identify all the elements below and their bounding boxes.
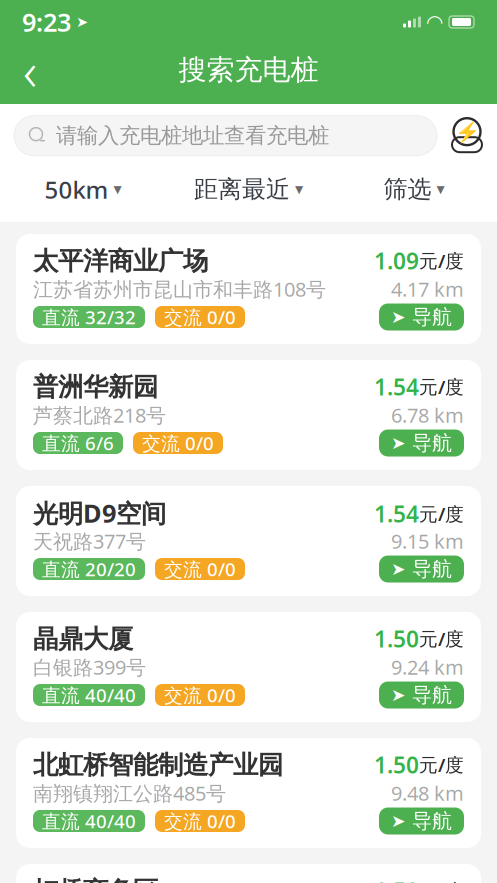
staticText: ▼ xyxy=(113,183,121,195)
staticText: 1.09 xyxy=(374,246,419,276)
staticText: 50km xyxy=(44,173,108,205)
staticText: 直流 40/40 xyxy=(42,683,136,707)
staticText: 4.17 km xyxy=(391,276,464,302)
staticText: 交流 0/0 xyxy=(164,557,236,581)
staticText: 直流 32/32 xyxy=(42,305,136,329)
staticText: 导航 xyxy=(412,809,452,833)
staticText: ‹ xyxy=(23,35,37,105)
staticText: 请输入充电桩地址查看充电桩 xyxy=(56,123,329,149)
button[interactable]: Back xyxy=(8,48,52,92)
staticText: 芦蔡北路218号 xyxy=(33,402,166,428)
staticText: 天祝路377号 xyxy=(33,528,146,554)
staticText: 1.50 xyxy=(374,750,419,780)
staticText: 导航 xyxy=(412,683,452,707)
staticText: 交流 0/0 xyxy=(142,431,214,455)
button[interactable]: 50km xyxy=(36,167,129,211)
button[interactable]: 光明D9空间 xyxy=(16,486,481,596)
staticText: 直流 20/20 xyxy=(42,557,136,581)
staticText: 元/度 xyxy=(419,626,464,651)
staticText: 9.15 km xyxy=(391,528,464,554)
staticText: 导航 xyxy=(412,431,452,455)
staticText: 搜索充电桩 xyxy=(178,53,318,87)
staticText: 直流 6/6 xyxy=(42,431,114,455)
staticText: 虹桥商务区 xyxy=(33,875,158,883)
staticText: ➤ xyxy=(391,811,406,831)
staticText: 筛选 xyxy=(383,175,431,204)
staticText: 普洲华新园 xyxy=(33,371,158,402)
staticText: ➤ xyxy=(391,307,406,327)
staticText: 直流 40/40 xyxy=(42,809,136,833)
staticText: ▼ xyxy=(436,183,444,195)
staticText: ◠ xyxy=(427,11,442,33)
staticText: 导航 xyxy=(412,305,452,329)
staticText: 导航 xyxy=(412,557,452,581)
staticText: 南翔镇翔江公路485号 xyxy=(33,780,226,806)
staticText: 光明D9空间 xyxy=(33,496,166,530)
button[interactable]: 晶鼎大厦 xyxy=(16,612,481,722)
staticText: 距离最近 xyxy=(194,175,290,204)
staticText: 9:23 xyxy=(22,5,71,39)
button[interactable]: Nearby charging stations xyxy=(447,115,487,157)
staticText: 交流 0/0 xyxy=(164,305,236,329)
button[interactable]: 太平洋商业广场 xyxy=(16,234,481,344)
button[interactable]: ➤ xyxy=(379,807,464,834)
staticText: 6.78 km xyxy=(391,402,464,428)
staticText: 1.50 xyxy=(374,876,419,883)
staticText: 江苏省苏州市昆山市和丰路108号 xyxy=(33,276,326,302)
staticText: 交流 0/0 xyxy=(164,683,236,707)
button[interactable]: ➤ xyxy=(379,303,464,330)
staticText: 9.48 km xyxy=(391,780,464,806)
staticText: 元/度 xyxy=(419,501,464,526)
staticText: 交流 0/0 xyxy=(164,809,236,833)
staticText: 元/度 xyxy=(419,752,464,777)
button[interactable]: 筛选 xyxy=(375,169,452,210)
staticText: 太平洋商业广场 xyxy=(33,245,208,276)
staticText: ⚡ xyxy=(454,120,479,143)
staticText: ➤ xyxy=(391,559,406,579)
staticText: ➤ xyxy=(391,433,406,453)
staticText: 1.54 xyxy=(374,499,419,529)
button[interactable]: ➤ xyxy=(379,429,464,456)
staticText: 白银路399号 xyxy=(33,654,146,680)
staticText: 1.50 xyxy=(374,624,419,654)
button[interactable]: 普洲华新园 xyxy=(16,360,481,470)
staticText: 9.24 km xyxy=(391,654,464,680)
staticText: 晶鼎大厦 xyxy=(33,623,133,654)
staticText: 元/度 xyxy=(419,374,464,399)
staticText: 北虹桥智能制造产业园 xyxy=(33,749,283,780)
staticText: ▼ xyxy=(295,183,303,195)
button[interactable]: 距离最近 xyxy=(186,169,311,210)
button[interactable]: 请输入充电桩地址查看充电桩 xyxy=(14,116,437,156)
staticText: 元/度 xyxy=(419,878,464,883)
staticText: ➤ xyxy=(391,685,406,705)
staticText: 1.54 xyxy=(374,372,419,402)
button[interactable]: 虹桥商务区 xyxy=(16,864,481,883)
staticText: 元/度 xyxy=(419,248,464,273)
button[interactable]: ➤ xyxy=(379,681,464,708)
button[interactable]: ➤ xyxy=(379,555,464,582)
staticText: ➤ xyxy=(76,14,88,30)
button[interactable]: 北虹桥智能制造产业园 xyxy=(16,738,481,848)
